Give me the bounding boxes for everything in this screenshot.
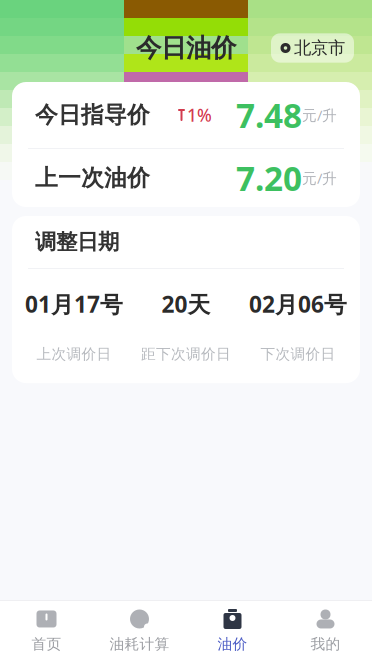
staticText: 1% <box>187 103 212 126</box>
staticText: 7.20 <box>236 156 302 200</box>
staticText: 我的 <box>310 635 340 653</box>
staticText: 调整日期 <box>35 229 119 255</box>
button[interactable]: 油耗计算 <box>93 601 186 661</box>
staticText: 今日油价 <box>136 32 236 63</box>
staticText: 首页 <box>31 635 61 653</box>
staticText: 元/升 <box>302 105 337 125</box>
staticText: 上次调价日 <box>36 345 111 363</box>
staticText: 7.48 <box>236 93 302 137</box>
staticText: 今日指导价 <box>35 101 150 129</box>
staticText: 01月17号 <box>25 289 123 319</box>
staticText: 02月06号 <box>249 289 347 319</box>
staticText: 油耗计算 <box>109 635 169 653</box>
staticText: 北京市 <box>294 37 345 59</box>
button[interactable]: 北京市 <box>271 33 354 63</box>
staticText: 上一次油价 <box>35 164 150 192</box>
staticText: 20天 <box>161 289 210 319</box>
button[interactable]: 首页 <box>0 601 93 661</box>
staticText: 元/升 <box>302 168 337 188</box>
button[interactable]: 油价 <box>186 601 279 661</box>
staticText: 油价 <box>217 635 247 653</box>
staticText: 下次调价日 <box>260 345 335 363</box>
button[interactable]: 我的 <box>279 601 372 661</box>
staticText: 距下次调价日 <box>141 345 231 363</box>
